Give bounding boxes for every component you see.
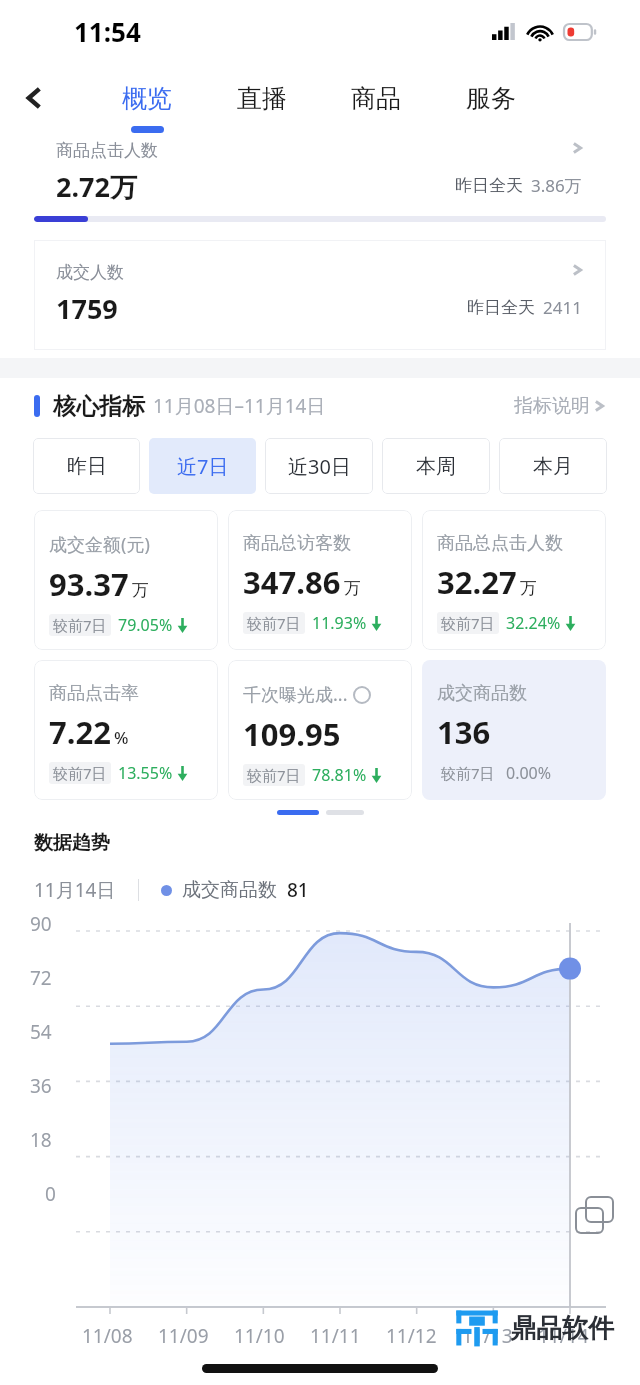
staticText: 成交人数	[56, 262, 124, 283]
button[interactable]: 近7日	[149, 438, 256, 494]
staticText: 11/09	[158, 1323, 209, 1349]
staticText: 347.86	[243, 561, 341, 603]
staticText: 较前7日	[247, 613, 301, 633]
staticText: 18	[30, 1127, 52, 1153]
button[interactable]: 本月	[499, 438, 607, 494]
staticText: 本周	[416, 454, 456, 479]
button[interactable]	[326, 810, 364, 815]
staticText: 较前7日	[53, 763, 107, 783]
button[interactable]: 商品点击人数	[34, 134, 606, 216]
button[interactable]: 服务	[446, 67, 536, 129]
staticText: 商品点击人数	[56, 140, 158, 161]
staticText: 概览	[122, 83, 172, 114]
staticText: 11/14	[538, 1323, 589, 1349]
staticText: 万	[520, 578, 537, 599]
staticText: 指标说明	[514, 394, 590, 418]
button[interactable]: 千次曝光成...	[228, 660, 412, 800]
staticText: 11月14日	[34, 877, 116, 903]
staticText: 万	[132, 580, 149, 601]
staticText: 78.81%	[312, 764, 367, 786]
staticText: 79.05%	[118, 614, 173, 636]
button[interactable]: 成交人数	[34, 240, 606, 350]
staticText: 32.24%	[506, 612, 561, 634]
button[interactable]: 本周	[382, 438, 490, 494]
button[interactable]: 商品总访客数	[228, 510, 412, 650]
staticText: 93.37	[49, 563, 129, 605]
button[interactable]: 商品点击率	[34, 660, 218, 800]
staticText: 鼎品软件	[510, 1312, 614, 1345]
button[interactable]: 成交商品数	[422, 660, 606, 800]
staticText: 商品点击率	[49, 682, 139, 705]
staticText: 11:54	[74, 14, 141, 49]
staticText: 90	[30, 911, 52, 937]
button[interactable]: 近30日	[265, 438, 373, 494]
staticText: 成交商品数	[437, 682, 527, 705]
staticText: 81	[287, 877, 309, 903]
staticText: 昨日全天	[467, 297, 535, 318]
button[interactable]: Back	[12, 75, 58, 121]
staticText: 13.55%	[118, 762, 173, 784]
staticText: 36	[30, 1073, 52, 1099]
staticText: 1759	[56, 290, 118, 327]
staticText: 54	[30, 1019, 52, 1045]
staticText: 千次曝光成...	[243, 682, 348, 707]
staticText: 近30日	[288, 453, 351, 480]
staticText: 直播	[237, 83, 287, 114]
staticText: 昨日全天	[455, 175, 523, 196]
staticText: 万	[344, 578, 361, 599]
staticText: 11.93%	[312, 612, 367, 634]
button[interactable]: 指标说明	[514, 394, 606, 418]
button[interactable]: 商品	[331, 67, 421, 129]
staticText: 数据趋势	[34, 831, 110, 855]
button[interactable]	[277, 810, 319, 815]
button[interactable]: 直播	[217, 67, 307, 129]
staticText: 成交金额(元)	[49, 532, 150, 557]
staticText: 11/10	[234, 1323, 285, 1349]
staticText: 商品总点击人数	[437, 532, 563, 555]
staticText: 2411	[543, 296, 582, 319]
staticText: 较前7日	[53, 615, 107, 635]
staticText: 商品	[351, 83, 401, 114]
staticText: 72	[30, 965, 52, 991]
staticText: 较前7日	[441, 763, 495, 783]
staticText: 核心指标	[53, 392, 145, 421]
button[interactable]: 成交金额(元)	[34, 510, 218, 650]
staticText: 0.00%	[506, 762, 552, 784]
staticText: 136	[437, 711, 491, 753]
staticText: 32.27	[437, 561, 517, 603]
staticText: 0	[45, 1181, 56, 1207]
staticText: 成交商品数	[182, 878, 277, 902]
staticText: 109.95	[243, 713, 341, 755]
staticText: 11/12	[386, 1323, 437, 1349]
staticText: 昨日	[67, 454, 107, 479]
staticText: 本月	[533, 454, 573, 479]
staticText: %	[114, 726, 129, 749]
button[interactable]: 昨日	[33, 438, 140, 494]
button[interactable]: 商品总点击人数	[422, 510, 606, 650]
staticText: 商品总访客数	[243, 532, 351, 555]
staticText: 7.22	[49, 711, 111, 753]
staticText: 3.86万	[531, 174, 582, 197]
staticText: 服务	[466, 83, 516, 114]
staticText: 11/13	[462, 1323, 513, 1349]
staticText: 2.72万	[56, 168, 137, 205]
staticText: 11月08日–11月14日	[153, 393, 326, 419]
staticText: 11/11	[310, 1323, 361, 1349]
staticText: 11/08	[82, 1323, 133, 1349]
staticText: 近7日	[177, 453, 229, 480]
staticText: 较前7日	[441, 613, 495, 633]
staticText: 较前7日	[247, 765, 301, 785]
button[interactable]: 概览	[102, 67, 192, 129]
